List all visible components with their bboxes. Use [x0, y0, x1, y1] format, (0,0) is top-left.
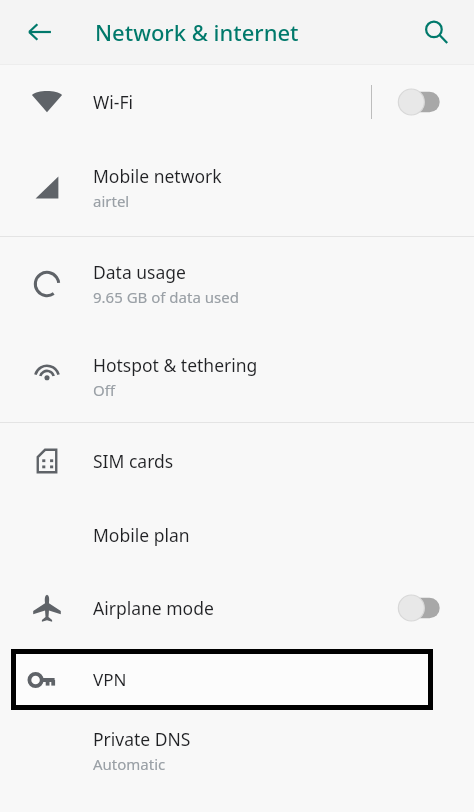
- button[interactable]: Airplane mode: [0, 571, 474, 645]
- button[interactable]: Wi-Fi: [0, 65, 474, 139]
- button[interactable]: Wi-Fi toggle: [392, 82, 446, 122]
- button[interactable]: Mobile network: [0, 139, 474, 236]
- staticText: Data usage: [93, 260, 186, 284]
- staticText: SIM cards: [93, 449, 174, 473]
- staticText: Off: [93, 380, 116, 400]
- staticText: VPN: [93, 668, 127, 691]
- staticText: Automatic: [93, 754, 166, 774]
- button[interactable]: Mobile plan: [0, 499, 474, 571]
- staticText: airtel: [93, 191, 130, 211]
- staticText: Mobile plan: [93, 523, 190, 547]
- staticText: Network & internet: [95, 17, 299, 47]
- staticText: Wi-Fi: [93, 90, 134, 114]
- button[interactable]: SIM cards: [0, 423, 474, 499]
- staticText: Hotspot & tethering: [93, 353, 258, 377]
- button[interactable]: Private DNS: [0, 710, 474, 790]
- staticText: Airplane mode: [93, 596, 214, 620]
- staticText: Mobile network: [93, 164, 222, 188]
- button[interactable]: Hotspot & tethering: [0, 330, 474, 422]
- button[interactable]: VPN: [11, 649, 433, 710]
- button[interactable]: Data usage: [0, 237, 474, 330]
- staticText: 9.65 GB of data used: [93, 287, 239, 307]
- staticText: Private DNS: [93, 727, 191, 751]
- button[interactable]: Search: [412, 8, 460, 56]
- button[interactable]: Back: [16, 8, 64, 56]
- button[interactable]: Airplane mode toggle: [392, 588, 446, 628]
